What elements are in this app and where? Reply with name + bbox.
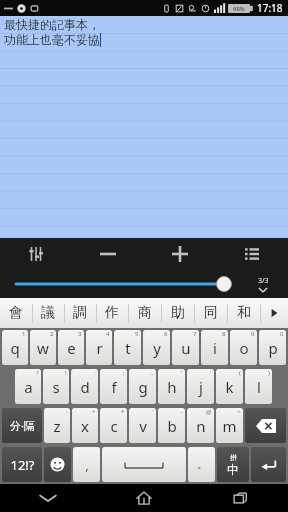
button[interactable]: Backspace	[245, 408, 286, 443]
button[interactable]: Increase	[144, 238, 216, 270]
button[interactable]: Space	[102, 447, 186, 482]
staticText: f	[111, 377, 117, 397]
button[interactable]: 0	[259, 330, 286, 365]
button[interactable]: 商	[128, 298, 161, 328]
staticText: 17:18	[257, 1, 283, 15]
button[interactable]: 議	[32, 298, 64, 328]
button[interactable]: '	[158, 369, 185, 404]
button[interactable]: 6	[143, 330, 170, 365]
staticText: 拼	[230, 453, 237, 462]
button[interactable]: Emoji	[44, 447, 71, 482]
button[interactable]: Decrease	[72, 238, 144, 270]
staticText: +	[92, 408, 96, 416]
button[interactable]: Tune	[0, 238, 72, 270]
staticText: 商	[138, 304, 152, 322]
staticText: 2	[50, 330, 54, 338]
staticText: 5	[135, 330, 139, 338]
staticText: d	[80, 377, 90, 397]
button[interactable]: Enter	[251, 447, 286, 482]
button[interactable]: 3/3	[238, 270, 288, 298]
staticText: g	[138, 377, 148, 397]
staticText: 同	[204, 304, 218, 322]
staticText: 議	[41, 304, 55, 322]
staticText: c	[110, 416, 118, 436]
staticText: ^	[237, 408, 241, 416]
staticText: 8	[222, 330, 226, 338]
button[interactable]: 和	[227, 298, 260, 328]
button[interactable]: 7	[172, 330, 199, 365]
staticText: '	[181, 369, 183, 377]
button[interactable]: More candidates	[260, 298, 288, 328]
staticText: 和	[237, 304, 251, 322]
staticText: r	[96, 338, 103, 358]
button[interactable]: 1	[2, 330, 28, 365]
staticText: !	[65, 369, 67, 377]
button[interactable]: 9	[230, 330, 257, 365]
staticText: e	[67, 338, 76, 358]
button[interactable]: 調	[64, 298, 96, 328]
button[interactable]: :	[71, 369, 98, 404]
button[interactable]: 同	[194, 298, 227, 328]
button[interactable]: Home	[96, 484, 192, 512]
staticText: x	[81, 416, 89, 436]
button[interactable]: ,	[73, 447, 100, 482]
staticText: 最快捷的記事本，	[4, 17, 100, 32]
staticText: ?	[36, 369, 39, 377]
staticText: 3/3	[258, 276, 269, 286]
button[interactable]: *	[100, 408, 127, 443]
button[interactable]: List	[216, 238, 288, 270]
button[interactable]: '	[187, 369, 214, 404]
button[interactable]: ..	[129, 369, 156, 404]
staticText: 6	[164, 330, 168, 338]
button[interactable]: 2	[30, 330, 56, 365]
staticText: p	[268, 338, 278, 358]
staticText: h	[167, 377, 177, 397]
button[interactable]: 助	[161, 298, 194, 328]
button[interactable]: ;	[100, 369, 127, 404]
button[interactable]: -	[158, 408, 185, 443]
button[interactable]: 8	[201, 330, 228, 365]
staticText: '	[210, 369, 212, 377]
staticText: y	[153, 338, 161, 358]
staticText: 功能上也毫不妥協	[4, 32, 100, 47]
button[interactable]: Recent apps	[192, 484, 288, 512]
staticText: b	[167, 416, 177, 436]
button[interactable]: ?	[15, 369, 41, 404]
button[interactable]: `	[129, 408, 156, 443]
button[interactable]: -	[44, 408, 70, 443]
button[interactable]: 作	[96, 298, 128, 328]
button[interactable]: )	[245, 369, 272, 404]
button[interactable]: Zoom slider	[16, 270, 230, 298]
button[interactable]: @	[187, 408, 214, 443]
staticText: v	[139, 416, 147, 436]
button[interactable]: 會	[0, 298, 32, 328]
staticText: (	[239, 369, 241, 377]
button[interactable]: 5	[114, 330, 141, 365]
staticText: ..	[150, 369, 154, 377]
staticText: o	[239, 338, 249, 358]
staticText: a	[24, 377, 33, 397]
staticText: l	[257, 377, 261, 397]
button[interactable]: !	[43, 369, 69, 404]
button[interactable]: Hide keyboard	[0, 484, 96, 512]
button[interactable]: Switch input language	[217, 447, 249, 482]
staticText: `	[152, 408, 154, 416]
staticText: 調	[73, 304, 87, 322]
staticText: m	[222, 416, 237, 436]
staticText: ,	[85, 457, 89, 473]
button[interactable]: 12!?	[2, 447, 42, 482]
button[interactable]: ^	[216, 408, 243, 443]
staticText: n	[196, 416, 206, 436]
staticText: s	[52, 377, 60, 397]
button[interactable]: +	[72, 408, 98, 443]
staticText: 9	[251, 330, 255, 338]
staticText: 1	[22, 330, 26, 338]
staticText: @	[206, 408, 212, 416]
button[interactable]: 3	[58, 330, 84, 365]
button[interactable]: 4	[86, 330, 112, 365]
staticText: -	[181, 408, 183, 416]
button[interactable]: 。	[188, 447, 215, 482]
button[interactable]: (	[216, 369, 243, 404]
staticText: )	[268, 369, 270, 377]
button[interactable]: 分·隔	[2, 408, 42, 443]
